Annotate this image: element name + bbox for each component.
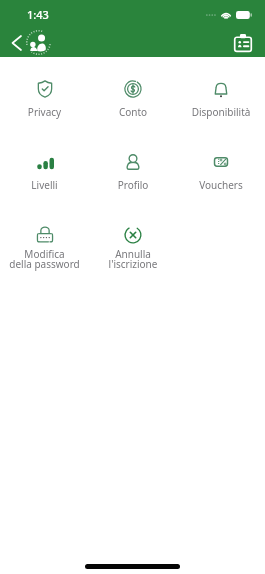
button[interactable]: Privacy <box>1 61 88 132</box>
button[interactable]: Vouchers <box>178 134 264 205</box>
staticText: Livelli <box>1 178 88 192</box>
staticText: Privacy <box>1 105 88 119</box>
staticText: Disponibilità <box>178 105 264 119</box>
button[interactable]: Membership card <box>233 33 253 53</box>
button[interactable]: Conto <box>90 61 176 132</box>
button[interactable]: Profilo <box>90 134 176 205</box>
staticText: Modifica della password <box>1 247 88 271</box>
staticText: Vouchers <box>178 178 264 192</box>
button[interactable]: Livelli <box>1 134 88 205</box>
button[interactable]: Annulla l'iscrizione <box>90 207 176 278</box>
staticText: Conto <box>90 105 176 119</box>
button[interactable]: Back <box>4 31 28 55</box>
button[interactable]: Disponibilità <box>178 61 264 132</box>
staticText: Profilo <box>90 178 176 192</box>
button[interactable]: Modifica della password <box>1 207 88 278</box>
staticText: Annulla l'iscrizione <box>90 247 176 271</box>
staticText: 1:43 <box>27 7 49 22</box>
